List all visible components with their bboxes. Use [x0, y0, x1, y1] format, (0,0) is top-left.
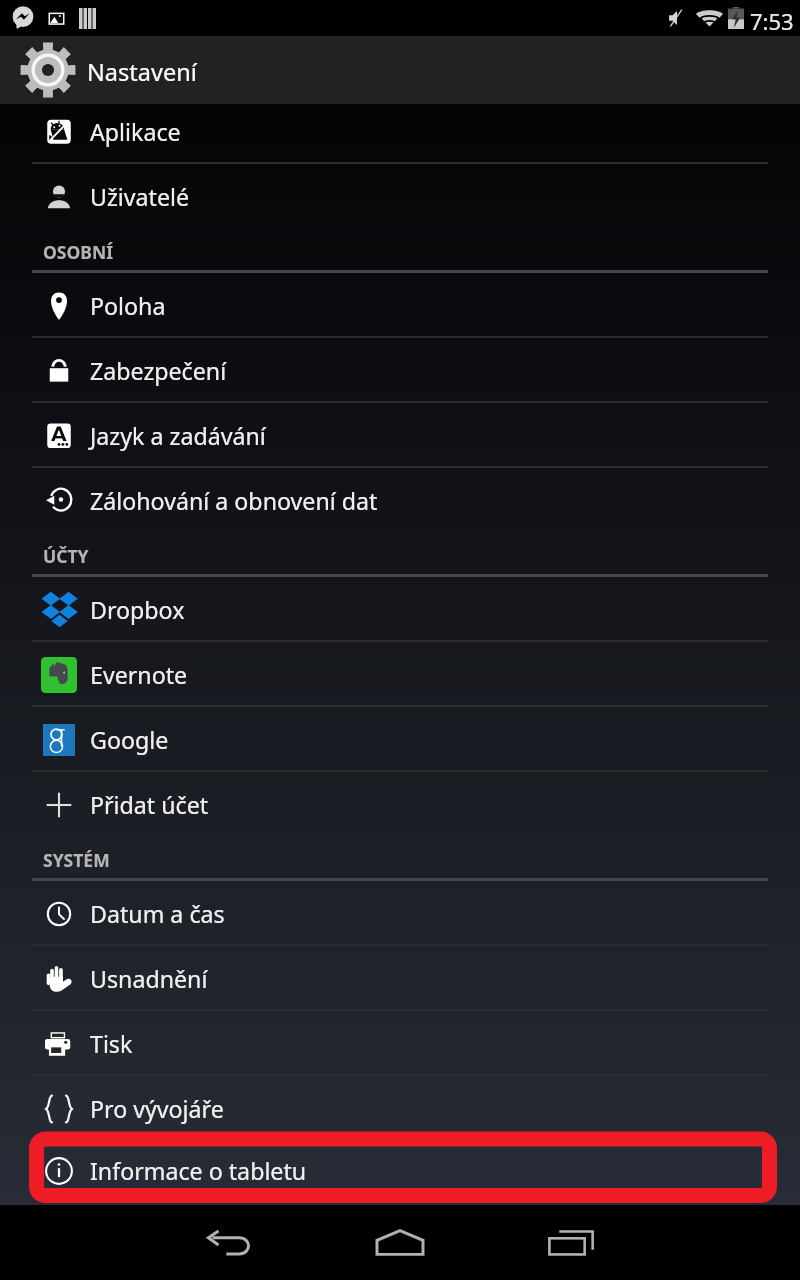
staticText: Uživatelé [90, 181, 190, 213]
staticText: ÚČTY [43, 544, 89, 568]
button[interactable]: Recent apps [511, 1205, 631, 1280]
staticText: Nastavení [87, 56, 197, 88]
staticText: Tisk [90, 1028, 133, 1060]
staticText: Datum a čas [90, 898, 225, 930]
staticText: Přidat účet [90, 789, 209, 821]
button[interactable]: Nastavení [0, 36, 800, 104]
staticText: Aplikace [90, 116, 181, 148]
button[interactable]: Uživatelé [0, 164, 800, 229]
staticText: Evernote [90, 659, 188, 691]
button[interactable]: Zálohování a obnovení dat [0, 468, 800, 533]
button[interactable]: Google [0, 707, 800, 772]
button[interactable]: Přidat účet [0, 772, 800, 837]
button[interactable]: Dropbox [0, 577, 800, 642]
button[interactable]: Home [340, 1205, 460, 1280]
button[interactable]: Zabezpečení [0, 338, 800, 403]
button[interactable]: Poloha [0, 273, 800, 338]
button[interactable]: Tisk [0, 1011, 800, 1076]
button[interactable]: Usnadnění [0, 946, 800, 1011]
staticText: Dropbox [90, 594, 185, 626]
button[interactable]: Evernote [0, 642, 800, 707]
staticText: Informace o tabletu [90, 1155, 307, 1187]
button[interactable]: Datum a čas [0, 881, 800, 946]
staticText: Zabezpečení [90, 355, 227, 387]
button[interactable]: Jazyk a zadávání [0, 403, 800, 468]
staticText: Google [90, 724, 169, 756]
staticText: Poloha [90, 290, 166, 322]
staticText: SYSTÉM [43, 848, 110, 872]
staticText: Usnadnění [90, 963, 208, 995]
staticText: Zálohování a obnovení dat [90, 485, 378, 517]
button[interactable]: Back [170, 1205, 290, 1280]
staticText: 7:53 [750, 6, 794, 36]
staticText: OSOBNÍ [43, 240, 113, 264]
button[interactable]: Aplikace [0, 99, 800, 164]
staticText: Jazyk a zadávání [90, 420, 266, 452]
staticText: Pro vývojáře [90, 1093, 224, 1125]
button[interactable]: Informace o tabletu [0, 1141, 800, 1200]
button[interactable]: Pro vývojáře [0, 1076, 800, 1141]
